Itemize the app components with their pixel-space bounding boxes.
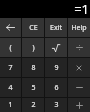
staticText: ) bbox=[32, 43, 35, 53]
staticText: 7 bbox=[8, 63, 13, 73]
button[interactable]: ) bbox=[22, 38, 44, 57]
button[interactable]: =1 bbox=[0, 0, 90, 18]
button[interactable]: 8 bbox=[22, 58, 44, 77]
staticText: =1 bbox=[74, 0, 89, 18]
staticText: 4 bbox=[8, 83, 13, 93]
button[interactable]: Plus bbox=[68, 98, 90, 112]
staticText: 1 bbox=[8, 100, 13, 110]
button[interactable]: 7 bbox=[0, 58, 21, 77]
staticText: Exit bbox=[50, 23, 62, 33]
staticText: CE bbox=[29, 23, 38, 33]
button[interactable]: 2 bbox=[22, 98, 44, 112]
button[interactable]: 9 bbox=[45, 58, 67, 77]
button[interactable]: 3 bbox=[45, 98, 67, 112]
button[interactable]: Backspace bbox=[0, 18, 21, 37]
button[interactable]: Exit bbox=[45, 18, 67, 37]
button[interactable]: Minus bbox=[68, 78, 90, 97]
button[interactable]: 5 bbox=[22, 78, 44, 97]
staticText: 9 bbox=[54, 63, 59, 73]
button[interactable]: ( bbox=[0, 38, 21, 57]
button[interactable]: CE bbox=[22, 18, 44, 37]
button[interactable]: 6 bbox=[45, 78, 67, 97]
button[interactable]: 4 bbox=[0, 78, 21, 97]
staticText: ( bbox=[9, 43, 12, 53]
button[interactable]: 1 bbox=[0, 98, 21, 112]
staticText: 3 bbox=[54, 100, 59, 110]
staticText: 8 bbox=[31, 63, 36, 73]
staticText: 5 bbox=[31, 83, 36, 93]
staticText: 6 bbox=[54, 83, 59, 93]
button[interactable]: Square root bbox=[45, 38, 67, 57]
button[interactable]: Help bbox=[68, 18, 90, 37]
button[interactable]: Multiply bbox=[68, 58, 90, 77]
staticText: 2 bbox=[31, 100, 36, 110]
staticText: Help bbox=[71, 23, 87, 33]
button[interactable]: Divide bbox=[68, 38, 90, 57]
